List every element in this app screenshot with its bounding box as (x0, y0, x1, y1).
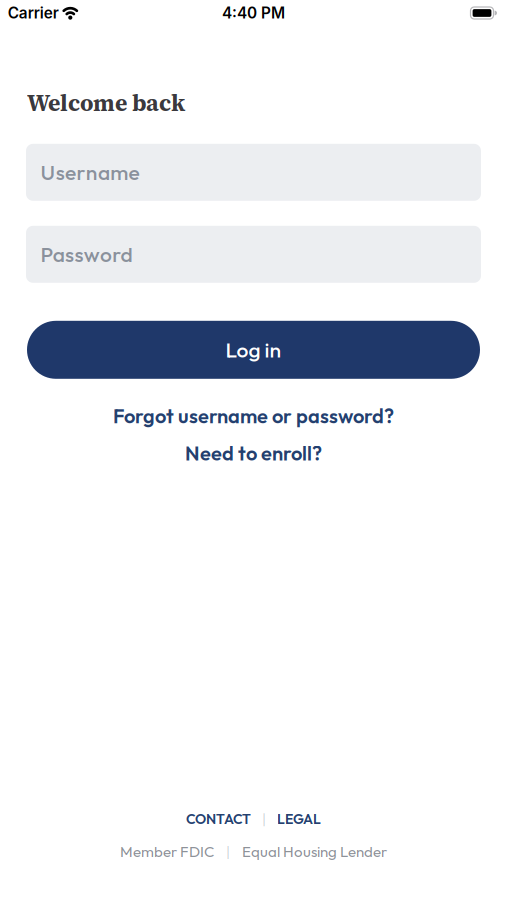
staticText: | (262, 809, 266, 828)
button[interactable]: LEGAL (277, 810, 321, 828)
staticText: Member FDIC (120, 842, 214, 861)
staticText: Carrier (8, 4, 59, 22)
button[interactable]: Username (26, 144, 481, 201)
button[interactable]: Log in (27, 321, 480, 379)
staticText: CONTACT (186, 810, 251, 828)
staticText: Need to enroll? (185, 440, 322, 466)
staticText: | (226, 842, 230, 861)
button[interactable]: Need to enroll? (185, 440, 322, 466)
staticText: LEGAL (277, 810, 321, 828)
button[interactable]: CONTACT (186, 810, 251, 828)
staticText: Password (40, 241, 133, 267)
button[interactable]: Forgot username or password? (113, 403, 394, 428)
staticText: Welcome back (27, 87, 185, 119)
button[interactable]: Password (26, 226, 481, 283)
staticText: 4:40 PM (222, 4, 285, 22)
staticText: Equal Housing Lender (242, 842, 387, 861)
staticText: Log in (225, 336, 281, 363)
staticText: Forgot username or password? (113, 403, 394, 428)
staticText: Username (40, 159, 140, 185)
